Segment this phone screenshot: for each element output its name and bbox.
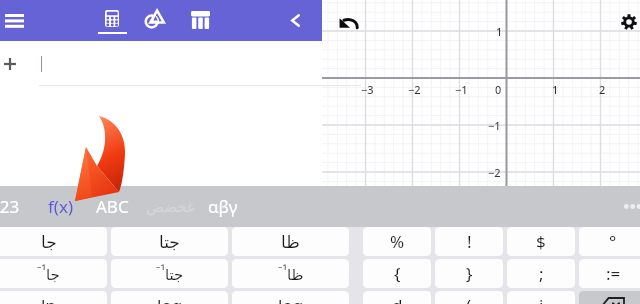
staticText: −3 bbox=[361, 82, 374, 97]
staticText: ظا bbox=[281, 232, 300, 252]
button[interactable]: جا bbox=[0, 227, 107, 256]
staticText: ABC bbox=[96, 195, 129, 218]
staticText: ظا bbox=[287, 266, 304, 283]
button[interactable]: f(x) bbox=[41, 186, 81, 227]
staticText: i bbox=[539, 294, 544, 304]
staticText: $ bbox=[536, 230, 546, 253]
button[interactable]: := bbox=[579, 259, 640, 288]
button[interactable]: % bbox=[363, 227, 431, 256]
staticText: 1 bbox=[496, 24, 503, 39]
staticText: f(x) bbox=[48, 195, 74, 218]
staticText: ° bbox=[609, 230, 617, 253]
staticText: ( bbox=[466, 294, 472, 304]
staticText: % bbox=[390, 230, 405, 253]
staticText: جتا bbox=[159, 232, 180, 252]
staticText: جا bbox=[41, 232, 57, 252]
staticText: −1 bbox=[455, 82, 468, 97]
button[interactable]: $ bbox=[507, 227, 575, 256]
button[interactable]: ⁻¹ bbox=[111, 259, 228, 288]
button[interactable]: ⁻¹ bbox=[232, 259, 349, 288]
staticText: جا bbox=[46, 266, 60, 283]
staticText: d bbox=[392, 294, 403, 304]
button[interactable]: 123 bbox=[0, 186, 28, 227]
staticText: { bbox=[394, 262, 401, 285]
button[interactable]: ⁻¹ bbox=[0, 259, 107, 288]
button[interactable]: Collapse panel bbox=[282, 0, 310, 41]
button[interactable]: αβγ bbox=[205, 186, 241, 227]
button[interactable]: i bbox=[507, 291, 575, 304]
staticText: −2 bbox=[488, 165, 501, 180]
button[interactable]: ( bbox=[435, 291, 503, 304]
button[interactable]: More options bbox=[612, 186, 640, 227]
staticText: 2 bbox=[599, 82, 606, 97]
button[interactable]: } bbox=[435, 259, 503, 288]
button[interactable]: Geometry tab bbox=[142, 0, 169, 41]
button[interactable]: ! bbox=[435, 227, 503, 256]
staticText: αβγ bbox=[208, 195, 238, 218]
button[interactable]: Settings bbox=[615, 8, 640, 36]
staticText: log bbox=[278, 294, 304, 304]
staticText: 0 bbox=[495, 82, 502, 97]
staticText: −1 bbox=[488, 118, 501, 133]
button[interactable]: Open menu bbox=[0, 0, 28, 41]
button[interactable]: Table tab bbox=[186, 0, 213, 41]
button[interactable]: log bbox=[232, 291, 349, 304]
staticText: := bbox=[606, 262, 621, 285]
button[interactable]: ° bbox=[579, 227, 640, 256]
button[interactable]: جتا bbox=[111, 227, 228, 256]
staticText: ; bbox=[539, 262, 544, 285]
staticText: 123 bbox=[0, 195, 20, 218]
button[interactable]: غخضض bbox=[146, 186, 195, 227]
button[interactable]: ظا bbox=[232, 227, 349, 256]
staticText: −2 bbox=[408, 82, 421, 97]
button[interactable]: Calculator tab bbox=[97, 0, 127, 41]
button[interactable]: Add input row bbox=[0, 41, 34, 87]
staticText: } bbox=[466, 262, 473, 285]
button[interactable]: log bbox=[111, 291, 228, 304]
staticText: ln bbox=[41, 294, 56, 304]
staticText: ⁻¹ bbox=[278, 261, 287, 279]
button[interactable]: d bbox=[363, 291, 431, 304]
button[interactable]: ln bbox=[0, 291, 107, 304]
button[interactable]: ; bbox=[507, 259, 575, 288]
staticText: جتا bbox=[165, 266, 184, 283]
staticText: غخضض bbox=[146, 198, 195, 215]
staticText: 1 bbox=[552, 82, 559, 97]
staticText: ⁻¹ bbox=[37, 261, 46, 279]
button[interactable]: Undo bbox=[334, 9, 362, 37]
staticText: ⁻¹ bbox=[156, 261, 165, 279]
staticText: log bbox=[157, 294, 183, 304]
staticText: ! bbox=[467, 230, 472, 253]
button[interactable]: Backspace bbox=[579, 291, 640, 304]
button[interactable]: { bbox=[363, 259, 431, 288]
button[interactable]: ABC bbox=[87, 186, 137, 227]
